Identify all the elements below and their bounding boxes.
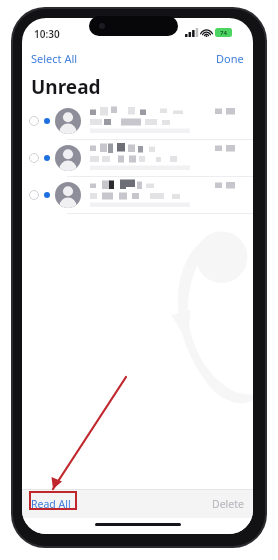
button[interactable]: Delete: [203, 493, 253, 515]
button[interactable]: Done: [207, 48, 253, 69]
staticText: Select All: [31, 51, 78, 66]
button[interactable]: Read All: [22, 493, 80, 515]
staticText: Done: [216, 51, 244, 66]
button[interactable]: Select message: [22, 140, 253, 177]
staticText: Delete: [212, 497, 244, 511]
staticText: Read All: [31, 497, 71, 511]
staticText: 74: [220, 29, 227, 37]
other: Select message: [29, 116, 39, 126]
button[interactable]: Select All: [22, 48, 87, 69]
other: Select message: [29, 153, 39, 163]
staticText: 10:30: [34, 27, 60, 41]
other: Select message: [29, 190, 39, 200]
button[interactable]: Select message: [22, 103, 253, 140]
button[interactable]: Select message: [22, 177, 253, 214]
staticText: Unread: [31, 74, 101, 100]
